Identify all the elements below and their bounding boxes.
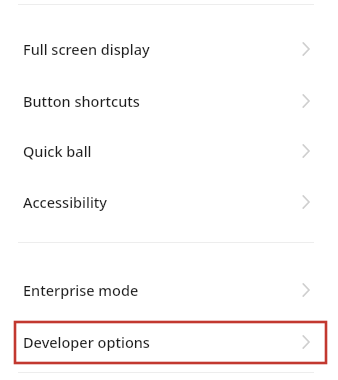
staticText: Enterprise mode: [23, 280, 139, 300]
staticText: Quick ball: [23, 141, 92, 161]
button[interactable]: Button shortcuts: [0, 78, 338, 124]
button[interactable]: Enterprise mode: [0, 267, 338, 313]
button[interactable]: Full screen display: [0, 26, 338, 72]
button[interactable]: Accessibility: [0, 179, 338, 225]
staticText: Accessibility: [23, 192, 108, 212]
staticText: Developer options: [23, 332, 150, 352]
staticText: Full screen display: [23, 39, 150, 59]
staticText: Button shortcuts: [23, 91, 140, 111]
button[interactable]: Quick ball: [0, 128, 338, 174]
button[interactable]: Developer options: [0, 319, 338, 365]
